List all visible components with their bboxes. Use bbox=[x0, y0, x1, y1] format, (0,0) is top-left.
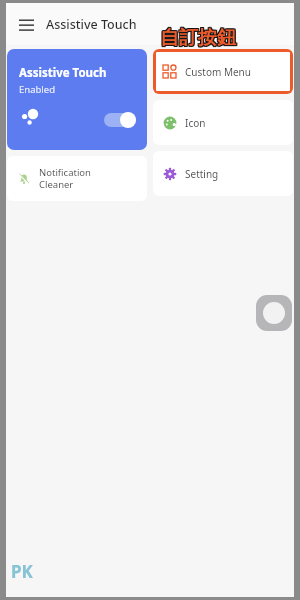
button[interactable]: Custom Menu bbox=[153, 49, 293, 94]
staticText: Assistive Touch bbox=[19, 65, 107, 81]
staticText: 自訂按鈕 bbox=[160, 25, 236, 49]
button[interactable]: Icon bbox=[153, 100, 293, 145]
button[interactable]: Assistive touch enabled toggle bbox=[104, 112, 136, 128]
staticText: 自訂按鈕 bbox=[161, 25, 237, 49]
staticText: Icon bbox=[185, 116, 206, 130]
staticText: Setting bbox=[185, 167, 219, 181]
staticText: 自訂按鈕 bbox=[160, 27, 236, 51]
button[interactable]: Notification Cleaner bbox=[7, 156, 147, 201]
staticText: 自訂按鈕 bbox=[161, 27, 237, 51]
staticText: 自訂按鈕 bbox=[159, 27, 235, 51]
button[interactable]: Assistive touch floating button bbox=[256, 295, 292, 331]
staticText: 自訂按鈕 bbox=[161, 26, 237, 50]
staticText: Assistive Touch bbox=[46, 16, 137, 33]
button[interactable]: Setting bbox=[153, 151, 293, 196]
staticText: Custom Menu bbox=[185, 65, 251, 79]
button[interactable]: Assistive Touch bbox=[7, 49, 147, 150]
staticText: Enabled bbox=[19, 83, 55, 96]
staticText: PK bbox=[11, 560, 33, 583]
button[interactable]: Open navigation menu bbox=[11, 9, 41, 39]
staticText: 自訂按鈕 bbox=[159, 26, 235, 50]
staticText: 自訂按鈕 bbox=[159, 25, 235, 49]
staticText: Notification Cleaner bbox=[39, 166, 91, 191]
staticText: 自訂按鈕 bbox=[160, 26, 236, 50]
